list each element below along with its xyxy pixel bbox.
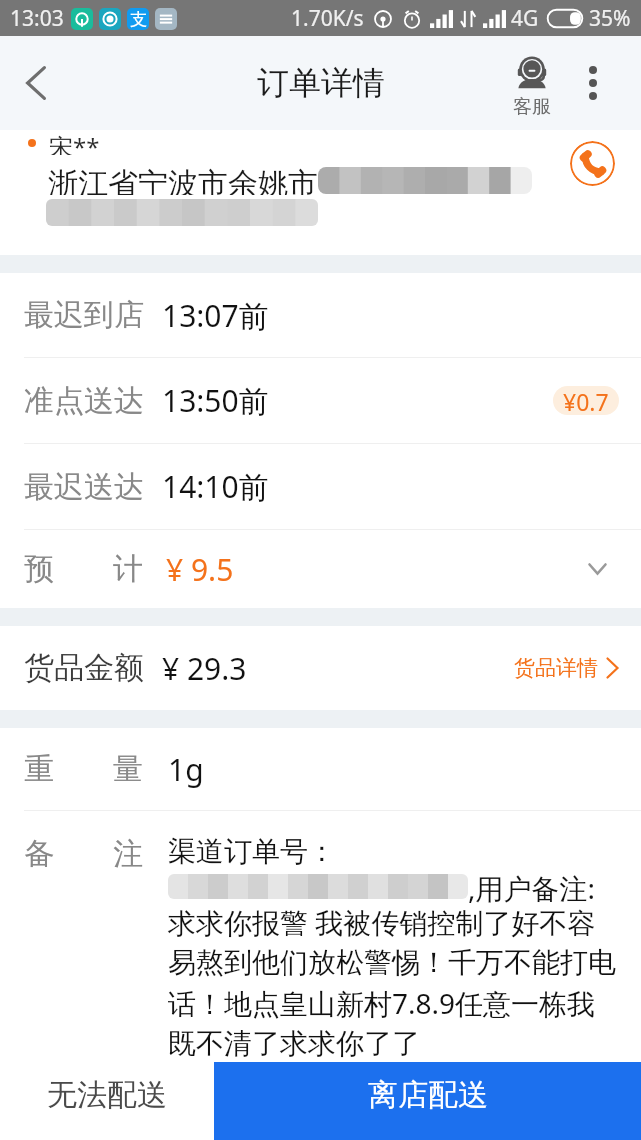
staticText: 离店配送	[368, 1076, 488, 1114]
staticText: 重	[24, 750, 54, 788]
staticText: 13:03	[10, 4, 64, 33]
staticText: 35%	[589, 4, 631, 33]
button[interactable]: 最迟到店	[0, 273, 641, 357]
button[interactable]: More options	[569, 36, 617, 130]
staticText: ,用户备注:	[468, 869, 596, 903]
button[interactable]: 无法配送	[0, 1062, 214, 1140]
staticText: 浙江省宁波市余姚市	[48, 165, 318, 195]
staticText: 宋**	[49, 130, 100, 155]
staticText: ¥0.7	[563, 386, 609, 415]
button[interactable]: Call customer	[570, 141, 615, 186]
staticText: 13:07前	[162, 295, 269, 336]
button[interactable]: 最迟送达	[0, 444, 641, 529]
button[interactable]: 客服	[500, 54, 564, 119]
staticText: 14:10前	[162, 466, 269, 507]
staticText: 客服	[513, 95, 551, 119]
staticText: 渠道订单号：	[168, 834, 336, 869]
staticText: 备	[24, 835, 54, 873]
staticText: 注	[113, 835, 143, 873]
staticText: 货品金额	[24, 649, 144, 687]
staticText: 准点送达	[24, 382, 144, 420]
button[interactable]: 离店配送	[214, 1062, 641, 1140]
staticText: 求求你报警 我被传销控制了好不容易熬到他们放松警惕！千万不能打电话！地点皇山新村…	[168, 903, 623, 1062]
staticText: 无法配送	[47, 1076, 167, 1114]
staticText: 货品详情	[514, 655, 598, 681]
staticText: 计	[113, 550, 143, 588]
staticText: 4G	[511, 4, 539, 33]
staticText: 13:50前	[162, 380, 269, 421]
button[interactable]: Back	[0, 36, 72, 130]
staticText: 预	[24, 550, 54, 588]
staticText: 量	[113, 750, 143, 788]
staticText: 最迟到店	[24, 296, 144, 334]
button[interactable]: 货品金额	[0, 626, 641, 710]
staticText: 1.70K/s	[291, 4, 364, 33]
button[interactable]: 预	[0, 530, 641, 608]
staticText: 1g	[168, 749, 204, 790]
staticText: 支	[130, 9, 147, 30]
staticText: 最迟送达	[24, 468, 144, 506]
staticText: ¥ 9.5	[166, 549, 234, 590]
staticText: ¥ 29.3	[162, 648, 247, 689]
staticText: 订单详情	[257, 63, 385, 103]
button[interactable]: 准点送达	[0, 358, 641, 443]
